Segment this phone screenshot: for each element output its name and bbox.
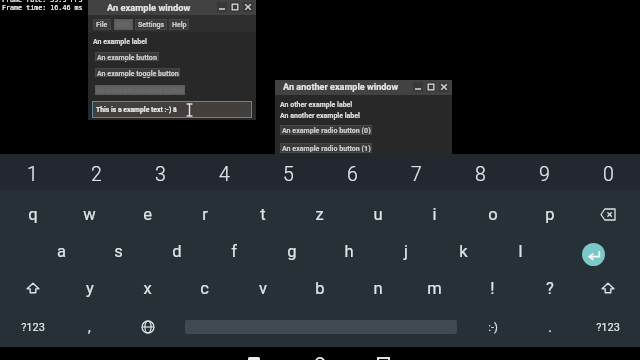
- button[interactable]: x: [119, 270, 176, 306]
- staticText: ,: [88, 319, 91, 335]
- button[interactable]: b: [291, 270, 348, 306]
- staticText: h: [344, 242, 354, 261]
- button[interactable]: 7: [384, 156, 448, 192]
- button[interactable]: c: [176, 270, 233, 306]
- button[interactable]: w: [61, 196, 118, 232]
- button[interactable]: Change language: [119, 309, 176, 345]
- staticText: 1: [27, 163, 38, 186]
- staticText: An example label: [93, 38, 147, 46]
- button[interactable]: o: [464, 196, 521, 232]
- staticText: r: [202, 205, 208, 224]
- button[interactable]: Settings: [135, 19, 167, 30]
- button[interactable]: 6: [320, 156, 384, 192]
- button[interactable]: Close: [439, 82, 449, 92]
- button[interactable]: Home: [290, 347, 350, 360]
- button[interactable]: This is a example text :-) ä: [92, 101, 252, 118]
- staticText: q: [28, 205, 38, 224]
- button[interactable]: Close: [243, 2, 253, 12]
- button[interactable]: 9: [512, 156, 576, 192]
- button[interactable]: Space: [180, 309, 461, 345]
- button[interactable]: 0: [576, 156, 640, 192]
- button[interactable]: a: [33, 233, 90, 269]
- button[interactable]: r: [176, 196, 233, 232]
- staticText: ?123: [596, 321, 620, 334]
- button[interactable]: t: [234, 196, 291, 232]
- button[interactable]: d: [148, 233, 205, 269]
- staticText: .: [548, 319, 552, 335]
- staticText: t: [260, 205, 266, 224]
- button[interactable]: i: [406, 196, 463, 232]
- button[interactable]: z: [291, 196, 348, 232]
- button[interactable]: f: [205, 233, 262, 269]
- button[interactable]: 2: [64, 156, 128, 192]
- button[interactable]: Help: [169, 19, 189, 30]
- button[interactable]: s: [90, 233, 147, 269]
- button[interactable]: Back: [224, 347, 284, 360]
- button[interactable]: !: [464, 270, 521, 306]
- button[interactable]: j: [377, 233, 434, 269]
- button[interactable]: Maximize: [230, 2, 240, 12]
- button[interactable]: Edit: [114, 19, 133, 30]
- staticText: ?123: [21, 321, 45, 334]
- staticText: g: [287, 242, 297, 261]
- button[interactable]: An example button: [95, 52, 159, 61]
- staticText: i: [432, 205, 437, 224]
- button[interactable]: q: [4, 196, 61, 232]
- button[interactable]: 4: [192, 156, 256, 192]
- button[interactable]: e: [119, 196, 176, 232]
- staticText: File: [96, 21, 108, 29]
- button[interactable]: u: [349, 196, 406, 232]
- button[interactable]: g: [263, 233, 320, 269]
- button[interactable]: File: [93, 19, 111, 30]
- staticText: m: [427, 279, 442, 298]
- button[interactable]: n: [349, 270, 406, 306]
- button[interactable]: y: [61, 270, 118, 306]
- button[interactable]: h: [320, 233, 377, 269]
- button[interactable]: ?: [521, 270, 578, 306]
- button[interactable]: .: [521, 309, 578, 345]
- button[interactable]: An example disabled button: [95, 85, 185, 95]
- button[interactable]: p: [521, 196, 578, 232]
- staticText: 5: [283, 163, 294, 186]
- staticText: 4: [219, 163, 230, 186]
- staticText: z: [315, 205, 324, 224]
- button[interactable]: ,: [61, 309, 118, 345]
- staticText: u: [373, 205, 383, 224]
- staticText: :-): [488, 321, 498, 334]
- button[interactable]: Enter: [568, 233, 618, 269]
- button[interactable]: An example radio button (0): [280, 125, 372, 135]
- button[interactable]: ?123: [4, 309, 61, 345]
- button[interactable]: Maximize: [426, 82, 436, 92]
- staticText: e: [143, 205, 152, 224]
- button[interactable]: Minimize: [217, 2, 227, 12]
- staticText: An other example label: [280, 101, 353, 109]
- staticText: 3: [155, 163, 166, 186]
- button[interactable]: 1: [0, 156, 64, 192]
- button[interactable]: :-): [464, 309, 521, 345]
- staticText: 6: [347, 163, 358, 186]
- staticText: An example toggle button: [97, 69, 179, 77]
- staticText: An example radio button (0): [282, 126, 371, 134]
- button[interactable]: 3: [128, 156, 192, 192]
- staticText: 0: [603, 163, 614, 186]
- button[interactable]: An example radio button (1): [280, 143, 372, 153]
- staticText: An example radio button (1): [282, 144, 371, 152]
- staticText: s: [114, 242, 123, 261]
- button[interactable]: Shift: [4, 270, 61, 306]
- button[interactable]: Recents: [355, 347, 415, 360]
- staticText: a: [57, 242, 66, 261]
- button[interactable]: m: [406, 270, 463, 306]
- button[interactable]: v: [234, 270, 291, 306]
- button[interactable]: 5: [256, 156, 320, 192]
- button[interactable]: 8: [448, 156, 512, 192]
- button[interactable]: Shift: [579, 270, 636, 306]
- button[interactable]: An example toggle button: [95, 68, 180, 77]
- staticText: This is a example text :-) ä: [96, 106, 177, 114]
- button[interactable]: ?123: [579, 309, 636, 345]
- button[interactable]: l: [492, 233, 549, 269]
- button[interactable]: Backspace: [579, 196, 636, 232]
- button[interactable]: k: [435, 233, 492, 269]
- staticText: An example window: [107, 2, 191, 13]
- staticText: An another example label: [280, 112, 360, 120]
- button[interactable]: Minimize: [413, 82, 423, 92]
